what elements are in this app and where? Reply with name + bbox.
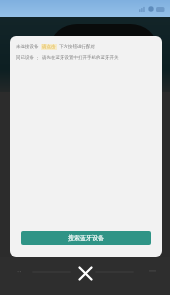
staticText: 搜索蓝牙设备 [68, 234, 104, 242]
staticText: 请先在蓝牙设置中打开手机的蓝牙开关 [42, 55, 119, 61]
staticText: : [37, 55, 39, 61]
button[interactable]: Recents [146, 267, 158, 277]
button[interactable]: Close [72, 260, 98, 286]
staticText: 下方按钮进行配对 [59, 44, 95, 50]
staticText: 同已设备 [16, 55, 34, 61]
staticText: 未连接设备 [16, 44, 39, 50]
button[interactable]: 搜索蓝牙设备 [21, 231, 151, 245]
staticText: •• [17, 268, 22, 276]
staticText: 请点击 [42, 44, 56, 50]
